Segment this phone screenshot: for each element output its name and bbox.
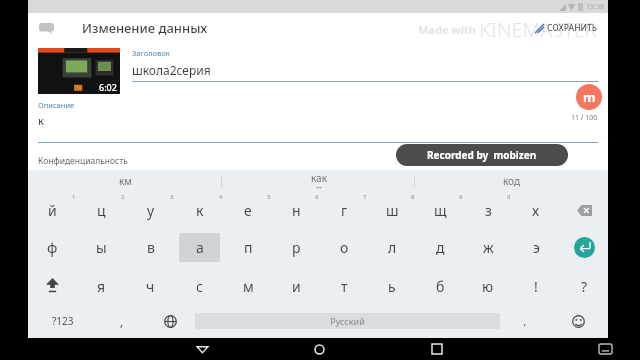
staticText: я [97,277,106,296]
staticText: м [243,277,254,296]
button[interactable]: ! [512,266,560,306]
staticText: 7 [363,193,367,201]
staticText: 3 [170,193,174,201]
button[interactable]: Enter [560,229,608,266]
staticText: . [523,313,527,329]
button[interactable]: Video thumbnail [38,48,120,94]
button[interactable]: г [320,192,368,229]
button[interactable]: ч [126,266,175,306]
button[interactable]: е [224,192,272,229]
button[interactable]: код [415,170,608,192]
button[interactable]: э [512,229,560,266]
button[interactable]: Switch keyboard [495,338,612,360]
staticText: ь [388,277,396,296]
button[interactable]: Mobizen recorder [576,84,602,110]
staticText: п [244,238,253,257]
staticText: как [311,171,327,185]
button[interactable]: ф [28,229,77,266]
button[interactable]: з [464,192,512,229]
button[interactable]: Recent apps [378,338,495,360]
button[interactable]: й [28,192,77,229]
staticText: ф [47,238,58,257]
button[interactable]: как [222,170,415,192]
button[interactable]: б [416,266,464,306]
button[interactable]: ш [368,192,416,229]
staticText: KINEMASTER [479,16,597,43]
staticText: m [583,88,596,106]
button[interactable]: . [500,306,549,336]
staticText: Заголовок [132,48,170,58]
button[interactable]: т [320,266,368,306]
button[interactable]: ы [77,229,126,266]
staticText: Изменение данных [82,19,208,37]
button[interactable]: ж [464,229,512,266]
button[interactable]: н [272,192,320,229]
staticText: Русский [330,315,365,327]
button[interactable]: Overlay [36,18,56,38]
staticText: й [48,201,57,220]
button[interactable]: Change language [146,306,195,336]
button[interactable]: школа2серия [132,62,598,78]
button[interactable]: л [368,229,416,266]
staticText: ц [97,201,106,220]
button[interactable]: ю [464,266,512,306]
button[interactable]: Backspace [560,192,608,229]
button[interactable]: Shift [28,266,77,306]
button[interactable]: к [38,113,571,128]
staticText: км [119,174,132,188]
button[interactable]: ?123 [28,306,97,336]
staticText: 19:38 [586,2,604,12]
button[interactable]: Home [261,338,378,360]
button[interactable]: о [320,229,368,266]
staticText: к [38,113,44,128]
staticText: т [341,277,348,296]
staticText: Recorded by mobizen [427,148,537,162]
staticText: щ [434,201,447,220]
staticText: ••• [316,185,322,192]
staticText: а [196,238,204,257]
button[interactable]: СОХРАНИТЬ [529,18,604,38]
button[interactable]: Back [144,338,261,360]
staticText: ! [534,277,538,296]
staticText: х [532,201,540,220]
button[interactable]: в [126,229,175,266]
button[interactable]: щ [416,192,464,229]
staticText: Конфиденциальность [38,155,128,167]
staticText: и [292,277,301,296]
button[interactable]: , [97,306,146,336]
button[interactable]: км [28,170,222,192]
button[interactable]: д [416,229,464,266]
button[interactable]: м [224,266,272,306]
staticText: с [196,277,203,296]
button[interactable]: р [272,229,320,266]
staticText: 5 [267,193,271,201]
staticText: 2 [121,193,125,201]
staticText: 1 [72,193,76,201]
button[interactable]: Русский [195,313,500,329]
staticText: з [485,201,492,220]
staticText: р [292,238,301,257]
button[interactable]: ц [77,192,126,229]
button[interactable]: с [175,266,224,306]
staticText: , [120,313,124,329]
staticText: в [147,238,155,257]
button[interactable]: я [77,266,126,306]
staticText: 6 [315,193,319,201]
button[interactable]: п [224,229,272,266]
button[interactable]: к [175,192,224,229]
button[interactable]: и [272,266,320,306]
button[interactable]: Открытый доступ [38,173,598,188]
button[interactable]: ? [560,266,608,306]
staticText: е [244,201,252,220]
staticText: ? [581,277,588,296]
button[interactable]: а [179,233,220,262]
button[interactable]: у [126,192,175,229]
staticText: школа2серия [132,62,211,78]
staticText: о [340,238,349,257]
button[interactable]: Emoji [549,306,608,336]
button[interactable]: ь [368,266,416,306]
staticText: ?123 [52,314,74,328]
staticText: Описание [38,100,75,110]
button[interactable]: х [512,192,560,229]
